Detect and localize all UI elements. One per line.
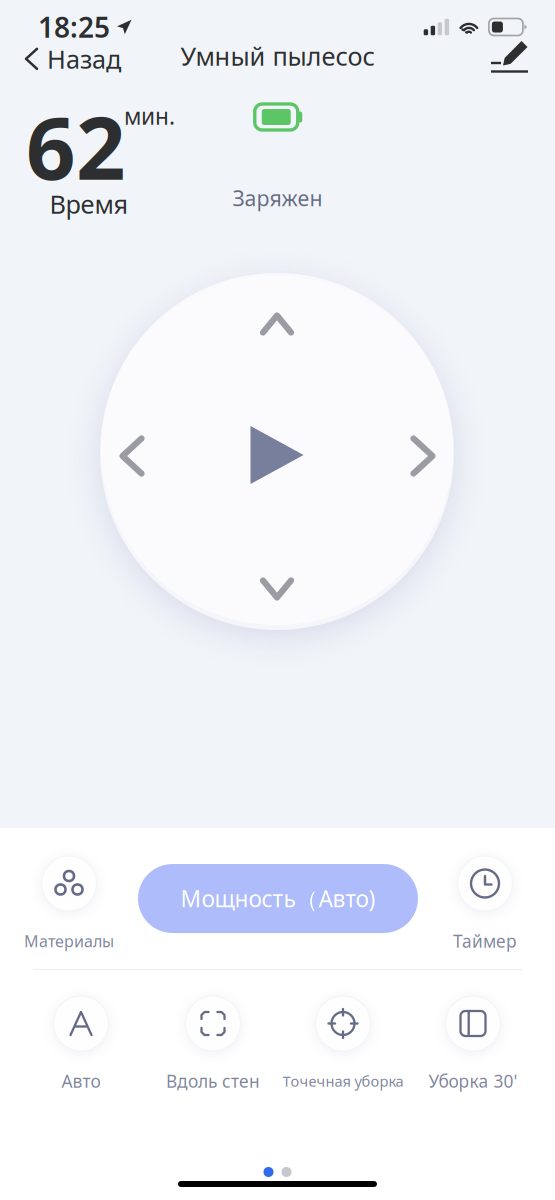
button[interactable]: Назад <box>18 37 129 81</box>
staticText: 18:25 <box>38 8 110 46</box>
button[interactable]: Материалы <box>4 856 134 948</box>
staticText: Умный пылесос <box>180 39 374 73</box>
button[interactable]: Вдоль стен <box>148 996 278 1088</box>
button[interactable]: Точечная уборка <box>263 996 423 1088</box>
button[interactable]: Left <box>108 424 155 487</box>
button[interactable]: Edit <box>487 37 532 77</box>
staticText: Авто <box>61 1069 100 1092</box>
staticText: 62 <box>26 88 126 204</box>
staticText: Время <box>49 187 128 221</box>
button[interactable]: Уборка 30' <box>408 996 538 1088</box>
button[interactable]: Мощность（Авто) <box>138 864 418 933</box>
staticText: мин. <box>124 101 175 131</box>
staticText: Заряжен <box>232 184 322 212</box>
button[interactable]: Down <box>249 566 305 611</box>
button[interactable]: Авто <box>16 996 146 1088</box>
staticText: Точечная уборка <box>282 1071 403 1091</box>
button[interactable]: Таймер <box>420 856 550 948</box>
staticText: Таймер <box>453 929 517 952</box>
button[interactable]: Up <box>249 301 305 346</box>
staticText: Вдоль стен <box>166 1069 260 1092</box>
staticText: Мощность（Авто) <box>180 883 375 914</box>
staticText: Материалы <box>24 930 114 952</box>
staticText: Назад <box>47 42 121 76</box>
button[interactable]: Right <box>399 424 446 487</box>
staticText: Уборка 30' <box>428 1069 517 1092</box>
button[interactable]: Start <box>236 412 317 498</box>
